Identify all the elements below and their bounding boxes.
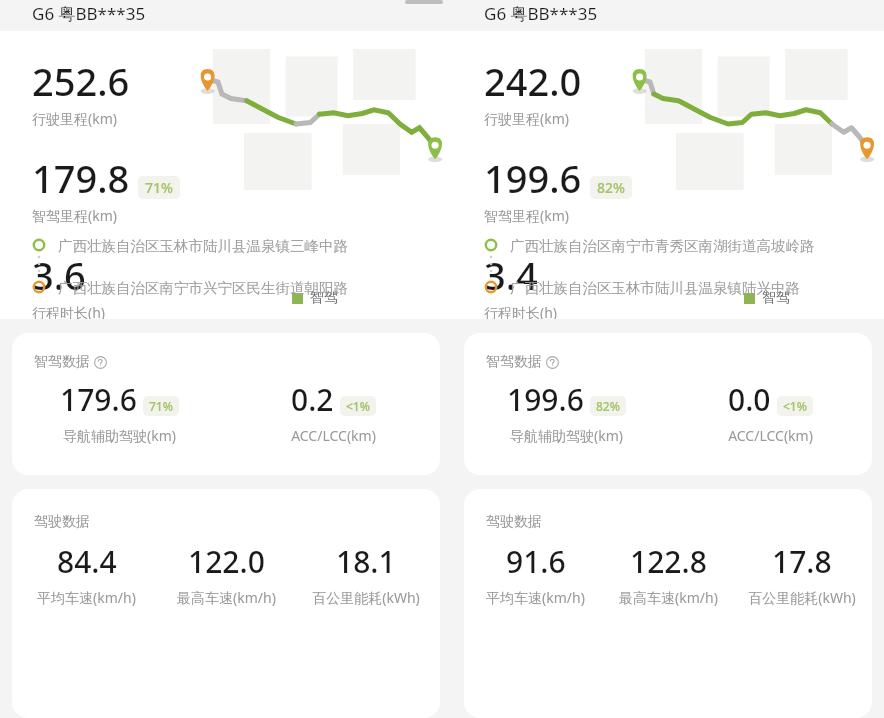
staticText: 最高车速(km/h) [177, 588, 276, 607]
staticText: 广西壮族自治区玉林市陆川县温泉镇三峰中路 [58, 237, 348, 255]
staticText: 3.4 [484, 249, 538, 301]
staticText: 广西壮族自治区南宁市青秀区南湖街道高坡岭路 [510, 237, 815, 255]
staticText: 智驾数据 [486, 353, 542, 371]
staticText: 行驶里程(km) [32, 109, 117, 128]
staticText: ACC/LCC(km) [728, 426, 813, 445]
staticText: ACC/LCC(km) [291, 426, 376, 445]
staticText: 122.8 [630, 541, 707, 582]
staticText: 91.6 [506, 541, 566, 582]
staticText: 百公里能耗(kWh) [748, 588, 856, 607]
staticText: 82% [597, 178, 625, 197]
staticText: 广西壮族自治区玉林市陆川县温泉镇陆兴中路 [510, 279, 800, 297]
staticText: 导航辅助驾驶(km) [63, 426, 176, 445]
staticText: 导航辅助驾驶(km) [510, 426, 623, 445]
button[interactable]: 智驾数据说明 [34, 353, 107, 371]
staticText: 17.8 [772, 541, 832, 582]
staticText: 行程时长(h) [32, 303, 106, 319]
staticText: 84.4 [57, 541, 117, 582]
staticText: 平均车速(km/h) [486, 588, 585, 607]
staticText: 智驾数据 [34, 353, 90, 371]
staticText: G6 粤BB***35 [32, 2, 146, 25]
staticText: 199.6 [484, 152, 582, 204]
staticText: 199.6 [507, 379, 584, 420]
staticText: 82% [596, 398, 620, 414]
staticText: 最高车速(km/h) [619, 588, 718, 607]
staticText: 智驾里程(km) [32, 206, 117, 225]
staticText: 18.1 [336, 541, 396, 582]
button[interactable]: 智驾数据说明 [486, 353, 559, 371]
staticText: 智驾 [762, 289, 790, 307]
staticText: 平均车速(km/h) [37, 588, 136, 607]
staticText: 0.2 [291, 379, 334, 420]
staticText: 252.6 [32, 55, 130, 107]
staticText: <1% [346, 398, 370, 414]
staticText: 0.0 [728, 379, 771, 420]
staticText: G6 粤BB***35 [484, 2, 598, 25]
staticText: 驾驶数据 [34, 513, 90, 531]
staticText: 122.0 [188, 541, 265, 582]
staticText: <1% [783, 398, 807, 414]
staticText: 179.6 [60, 379, 137, 420]
staticText: 智驾 [310, 289, 338, 307]
staticText: 驾驶数据 [486, 513, 542, 531]
staticText: 百公里能耗(kWh) [312, 588, 420, 607]
staticText: 179.8 [32, 152, 130, 204]
staticText: 广西壮族自治区南宁市兴宁区民生街道朝阳路 [58, 279, 348, 297]
staticText: 行驶里程(km) [484, 109, 569, 128]
staticText: 3.6 [32, 249, 86, 301]
staticText: 71% [145, 178, 173, 197]
staticText: 智驾里程(km) [484, 206, 569, 225]
staticText: 242.0 [484, 55, 582, 107]
staticText: 行程时长(h) [484, 303, 558, 319]
staticText: 71% [149, 398, 173, 414]
